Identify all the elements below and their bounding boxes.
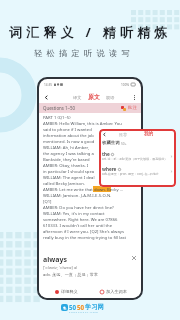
staticText: 100% [121,83,130,87]
staticText: AMBER: Let me write that down. Becky ... [43,187,124,193]
staticText: WILLIAM: Jamison. J-A-M-I-E-S-O-N. [43,193,112,199]
button[interactable]: Close [131,255,137,261]
staticText: PART 1 (Q1~5) [43,115,71,121]
staticText: 加入生词本 [106,289,127,294]
button[interactable]: Back [42,93,50,101]
staticText: ['ɔ:lweiz; 'ɔ:lweɪz] ◂) [43,265,77,270]
staticText: AMBER: Do you have her direct line? [43,205,114,211]
staticText: 50 [77,303,85,311]
staticText: WILLIAM: The agent I deal [43,175,95,181]
staticText: the [102,151,110,157]
staticText: 批注 [128,105,137,111]
button[interactable]: 原文 [88,93,100,101]
staticText: WILLIAM: Yes, it's in my contact [43,211,105,217]
button[interactable]: Back [102,132,107,137]
button[interactable]: Questions 1~50 [43,103,137,113]
button[interactable]: More options [130,93,138,101]
button[interactable]: 推荐 [119,132,127,137]
staticText: 50 [69,303,77,311]
staticText: Questions 1~50 [43,105,76,111]
staticText: [Q1] [43,199,52,205]
staticText: 轻松搞定听说读写 [34,48,134,58]
staticText: afternoon if I were you. [Q2] She's alwa… [43,229,124,235]
button[interactable]: 双语 [106,95,115,100]
staticText: 词汇释义 / 精听精炼 [9,23,172,41]
staticText: called Becky Jamison. [43,181,85,187]
button[interactable]: 详细释义 [43,289,90,294]
staticText: 14:35 [44,83,53,87]
staticText: said to phone if I wanted [43,127,92,133]
button[interactable]: the [102,151,173,161]
staticText: always [43,255,67,265]
staticText: 收藏生词 [102,140,120,146]
button[interactable]: 译文 [73,95,82,100]
staticText: information about the job [43,133,94,139]
staticText: really busy in the morning trying to fil… [43,235,127,241]
button[interactable]: where [102,166,173,176]
staticText: 50+ [121,142,127,146]
staticText: 详细释义 [61,289,78,294]
staticText: the agency I was talking a [43,151,94,157]
button[interactable]: 我的 [144,131,154,137]
staticText: art. 这；那；adv.更加（用于比较级，最高级前） [102,157,168,161]
staticText: adv.在哪里；pron. 哪里；conj. 在…的地方 [102,172,159,176]
button[interactable]: 加入生词本 [90,289,137,294]
staticText: AMBER: Okay, thanks. I [43,163,89,169]
staticText: 5 0 5 0 X U E X I . C O M [69,311,98,314]
staticText: in particular I should spea [43,169,95,175]
staticText: somewhere. Right here. We are 07866 [43,217,118,223]
staticText: 610333. I wouldn't call her until the [43,223,113,229]
staticText: mentioned. Is now a good [43,139,95,145]
staticText: where [102,166,117,172]
staticText: WILLIAM: Ah, hi Amber, [43,145,89,151]
staticText: adv. 永远、一直；总是；常常 [43,272,99,278]
staticText: 学习网 [85,303,104,311]
staticText: Bankside, they're based [43,157,90,163]
staticText: AMBER: Hello William, this is Amber. You [43,121,122,127]
